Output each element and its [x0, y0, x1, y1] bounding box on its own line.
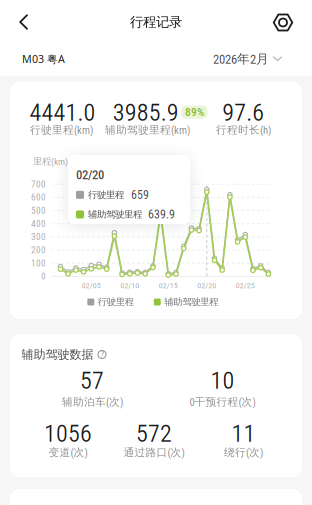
- staticText: 行程时长(h): [216, 123, 271, 137]
- staticText: 400: [31, 218, 46, 229]
- staticText: 变道(次): [48, 446, 87, 459]
- staticText: 辅助驾驶数据: [21, 347, 93, 362]
- staticText: 97.6: [222, 98, 264, 126]
- button[interactable]: 辅助驾驶数据说明: [97, 350, 106, 359]
- staticText: 10: [210, 366, 234, 394]
- staticText: 639.9: [148, 207, 175, 221]
- staticText: 11: [231, 419, 255, 447]
- staticText: 行驶里程(km): [30, 123, 93, 137]
- staticText: 绕行(次): [224, 446, 263, 459]
- button[interactable]: M03 粤A: [0, 45, 156, 73]
- staticText: 辅助泊车(次): [62, 395, 123, 409]
- staticText: 辅助驾驶里程(km): [105, 123, 190, 137]
- button[interactable]: 2026年2月: [156, 45, 312, 73]
- staticText: 行程记录: [130, 14, 182, 30]
- staticText: 89%: [185, 105, 204, 119]
- staticText: 02/10: [120, 281, 139, 290]
- staticText: 0干预行程(次): [189, 395, 255, 409]
- staticText: 300: [31, 231, 46, 242]
- staticText: 里程(km): [33, 156, 68, 167]
- staticText: 行驶里程: [98, 296, 134, 308]
- staticText: 659: [131, 188, 149, 202]
- staticText: 2026年2月: [213, 51, 269, 67]
- staticText: 02/15: [159, 281, 178, 290]
- button[interactable]: 设置: [261, 0, 305, 44]
- staticText: 02/25: [236, 281, 255, 290]
- staticText: 02/20: [76, 167, 104, 182]
- staticText: 200: [31, 245, 46, 255]
- staticText: ?: [100, 349, 103, 360]
- staticText: 辅助驾驶里程: [88, 209, 142, 220]
- button[interactable]: 返回: [0, 0, 44, 44]
- staticText: 57: [80, 366, 104, 394]
- staticText: 02/05: [82, 281, 101, 290]
- staticText: 3985.9: [113, 98, 179, 126]
- staticText: 1056: [44, 419, 92, 447]
- staticText: 700: [31, 179, 46, 190]
- staticText: 572: [136, 419, 172, 447]
- staticText: 500: [31, 205, 46, 216]
- staticText: 100: [31, 258, 46, 269]
- staticText: 600: [31, 192, 46, 203]
- staticText: M03 粤A: [22, 52, 65, 66]
- staticText: 辅助驾驶里程: [164, 296, 218, 308]
- staticText: 0: [41, 271, 46, 282]
- staticText: 4441.0: [29, 98, 95, 126]
- staticText: 通过路口(次): [123, 446, 184, 459]
- staticText: 02/20: [197, 281, 216, 290]
- staticText: 行驶里程: [88, 189, 124, 201]
